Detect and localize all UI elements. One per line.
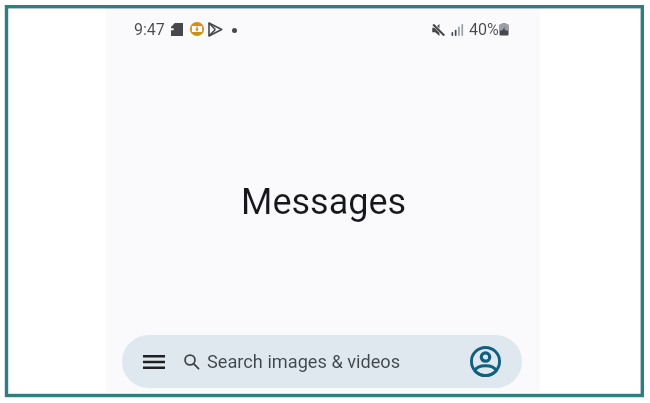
staticText: 9:47	[134, 20, 165, 39]
button[interactable]: Account	[466, 342, 505, 381]
button[interactable]: Open navigation menu	[122, 335, 522, 388]
staticText: 40%	[469, 20, 499, 39]
button[interactable]: Open navigation menu	[135, 343, 172, 380]
staticText: Messages	[241, 181, 407, 223]
staticText: Search images & videos	[207, 351, 401, 372]
